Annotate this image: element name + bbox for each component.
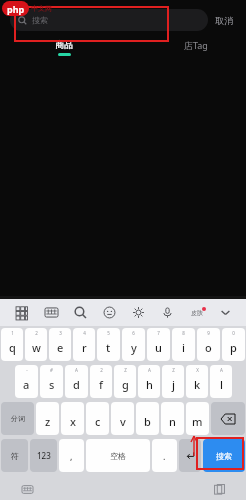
button[interactable]: Emoji <box>95 299 124 326</box>
button[interactable]: 0 <box>222 328 245 361</box>
button[interactable]: z <box>36 402 59 435</box>
button[interactable]: Keyboard switch <box>20 482 34 496</box>
button[interactable]: A <box>138 365 160 398</box>
staticText: 符 <box>11 451 19 461</box>
button[interactable]: m <box>186 402 209 435</box>
button[interactable]: 空格 <box>86 439 150 472</box>
staticText: l <box>220 377 223 392</box>
staticText: 分词 <box>11 414 25 423</box>
button[interactable]: 2 <box>90 365 112 398</box>
button[interactable]: 商品 <box>34 39 94 56</box>
button[interactable]: 1 <box>1 328 23 361</box>
button[interactable]: 6 <box>122 328 145 361</box>
button[interactable]: Z <box>162 365 184 398</box>
staticText: 3 <box>59 330 62 336</box>
button[interactable]: 3 <box>49 328 71 361</box>
button[interactable]: X <box>186 365 208 398</box>
staticText: 7 <box>157 330 160 336</box>
button[interactable]: A <box>65 365 88 398</box>
button[interactable]: 取消 <box>208 7 240 33</box>
staticText: s <box>49 377 55 392</box>
staticText: d <box>73 377 80 392</box>
staticText: 中文网 <box>31 4 52 13</box>
button[interactable]: 符 <box>1 439 28 472</box>
staticText: w <box>32 340 41 355</box>
staticText: e <box>57 340 64 355</box>
button[interactable]: Settings <box>124 299 153 326</box>
staticText: c <box>95 414 101 429</box>
button[interactable]: 8 <box>172 328 195 361</box>
staticText: 8 <box>182 330 185 336</box>
button[interactable]: 2 <box>25 328 47 361</box>
button[interactable]: Skin <box>182 299 211 326</box>
button[interactable]: Enter <box>179 439 201 472</box>
button[interactable]: c <box>86 402 109 435</box>
button[interactable]: Search <box>66 299 95 326</box>
staticText: j <box>172 377 175 392</box>
staticText: r <box>82 340 87 355</box>
button[interactable]: 123 <box>30 439 57 472</box>
staticText: 空格 <box>110 451 126 461</box>
button[interactable]: # <box>40 365 63 398</box>
staticText: u <box>155 340 162 355</box>
staticText: 0 <box>232 330 235 336</box>
staticText: # <box>50 367 53 373</box>
button[interactable]: v <box>111 402 134 435</box>
button[interactable]: 分词 <box>1 402 34 435</box>
staticText: m <box>192 414 203 429</box>
staticText: g <box>122 377 129 392</box>
button[interactable]: x <box>61 402 84 435</box>
button[interactable]: b <box>136 402 159 435</box>
staticText: Z <box>124 367 127 373</box>
staticText: php <box>7 3 25 15</box>
button[interactable]: Grid layout <box>6 299 36 326</box>
staticText: X <box>196 367 199 373</box>
staticText: n <box>169 414 176 429</box>
staticText: z <box>45 414 51 429</box>
button[interactable]: 7 <box>147 328 170 361</box>
button[interactable]: Clipboard <box>212 482 226 496</box>
staticText: i <box>182 340 185 355</box>
staticText: 4 <box>83 330 86 336</box>
staticText: h <box>146 377 153 392</box>
staticText: 123 <box>37 450 51 461</box>
staticText: 1 <box>11 330 14 336</box>
staticText: A <box>220 367 223 373</box>
button[interactable]: Backspace <box>211 402 245 435</box>
staticText: . <box>163 450 166 462</box>
button[interactable]: n <box>161 402 184 435</box>
staticText: a <box>23 377 30 392</box>
button[interactable]: A <box>210 365 232 398</box>
button[interactable]: . <box>152 439 177 472</box>
staticText: 搜索 <box>32 15 48 25</box>
button[interactable]: , <box>59 439 84 472</box>
staticText: q <box>9 340 16 355</box>
staticText: 6 <box>132 330 135 336</box>
button[interactable]: Voice input <box>153 299 182 326</box>
button[interactable]: 4 <box>73 328 95 361</box>
staticText: f <box>99 377 103 392</box>
staticText: - <box>26 367 28 373</box>
staticText: k <box>194 377 201 392</box>
button[interactable]: 搜索 <box>10 9 208 31</box>
staticText: Z <box>172 367 175 373</box>
staticText: 5 <box>107 330 110 336</box>
button[interactable]: 5 <box>97 328 120 361</box>
button[interactable]: 搜索 <box>203 439 245 472</box>
staticText: p <box>230 340 237 355</box>
button[interactable]: Keyboard <box>36 299 66 326</box>
staticText: 2 <box>100 367 103 373</box>
button[interactable]: - <box>15 365 38 398</box>
staticText: A <box>75 367 78 373</box>
staticText: v <box>120 414 126 429</box>
staticText: 店Tag <box>184 39 208 51</box>
staticText: 商品 <box>55 39 73 50</box>
staticText: o <box>205 340 212 355</box>
button[interactable]: Z <box>114 365 136 398</box>
staticText: 皮肤 <box>191 309 203 317</box>
button[interactable]: 9 <box>197 328 220 361</box>
staticText: y <box>131 340 137 355</box>
staticText: 9 <box>207 330 210 336</box>
button[interactable]: 店Tag <box>166 39 226 51</box>
button[interactable]: Collapse keyboard <box>211 299 240 326</box>
